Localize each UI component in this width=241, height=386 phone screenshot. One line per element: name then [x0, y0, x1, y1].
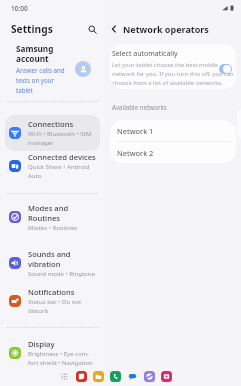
staticText: Select automatically — [112, 49, 178, 59]
staticText: Network 1 — [117, 126, 154, 136]
staticText: Network 2 — [117, 148, 154, 158]
staticText: Connections — [28, 119, 74, 129]
button[interactable]: Instagram — [161, 371, 172, 382]
button[interactable]: Select automatically toggle — [219, 64, 232, 74]
button[interactable]: Network 2 — [110, 142, 236, 163]
staticText: Connected devices — [28, 152, 96, 162]
button[interactable]: Files — [93, 371, 104, 382]
staticText: Display — [28, 339, 55, 349]
staticText: Network operators — [123, 23, 209, 35]
button[interactable]: Network 1 — [110, 120, 236, 141]
staticText: Let your tablet choose the best mobile n… — [112, 61, 234, 87]
button[interactable]: Gmail — [76, 371, 87, 382]
staticText: Settings — [11, 22, 53, 36]
button[interactable]: Connected devices — [5, 151, 100, 181]
button[interactable]: Internet — [144, 371, 155, 382]
staticText: Modes and Routines — [28, 203, 69, 223]
button[interactable]: Notifications — [5, 286, 100, 316]
button[interactable]: Select automatically — [110, 44, 236, 89]
button[interactable]: Search — [85, 22, 99, 36]
button[interactable]: Connections — [5, 115, 100, 151]
button[interactable]: All apps — [58, 370, 70, 382]
button[interactable]: Back — [108, 23, 120, 35]
staticText: Status bar • Do not disturb — [28, 298, 82, 315]
staticText: Samsung account — [16, 43, 54, 65]
staticText: Brightness • Eye com- fort shield • Navi… — [28, 350, 93, 367]
staticText: Wi-Fi • Bluetooth • SIM manager — [28, 130, 92, 147]
button[interactable]: Samsung account — [5, 41, 100, 97]
staticText: 10:00 — [11, 4, 28, 13]
button[interactable]: Phone — [110, 371, 121, 382]
button[interactable]: Modes and Routines — [5, 200, 100, 234]
staticText: Notifications — [28, 287, 75, 297]
button[interactable]: Sounds and vibration — [5, 246, 100, 280]
staticText: Modes • Routines — [28, 224, 78, 232]
button[interactable]: Messages — [127, 371, 138, 382]
button[interactable]: Display — [5, 336, 100, 370]
staticText: Quick Share • Android Auto — [28, 163, 90, 180]
staticText: Sounds and vibration — [28, 249, 71, 269]
staticText: Answer calls and texts on your tablet — [16, 66, 65, 95]
staticText: Available networks — [112, 103, 167, 111]
staticText: Sound mode • Ringtone — [28, 270, 95, 278]
